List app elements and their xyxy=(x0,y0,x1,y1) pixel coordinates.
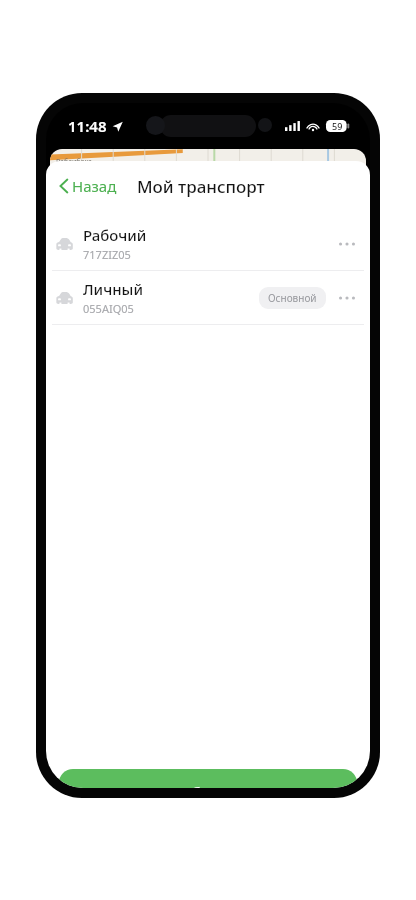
staticText: Назад xyxy=(72,176,117,196)
staticText: Основной xyxy=(268,291,317,305)
staticText: Рабочий xyxy=(83,225,147,245)
staticText: Личный xyxy=(83,279,143,299)
staticText: 717ZIZ05 xyxy=(83,247,131,262)
staticText: 11:48 xyxy=(68,116,107,136)
staticText: Добавить xyxy=(168,782,248,788)
staticText: 055AIQ05 xyxy=(83,301,134,316)
staticText: Рабаибека xyxy=(56,157,92,167)
staticText: Мой транспорт xyxy=(137,175,265,198)
button[interactable]: More options xyxy=(334,285,360,311)
button[interactable]: Рабочий xyxy=(46,217,370,270)
button[interactable]: Добавить xyxy=(59,769,357,788)
button[interactable]: Назад xyxy=(54,170,123,202)
button[interactable]: More options xyxy=(334,231,360,257)
staticText: 59 xyxy=(332,120,343,132)
button[interactable]: Личный xyxy=(46,271,370,324)
